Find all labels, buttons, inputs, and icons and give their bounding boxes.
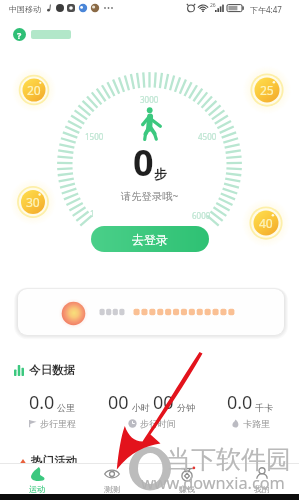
staticText: 去登录 xyxy=(132,232,168,247)
staticText: 6000 xyxy=(192,210,211,221)
staticText: ? xyxy=(17,29,22,41)
staticText: 3000 xyxy=(140,94,159,105)
staticText: 千卡 xyxy=(255,402,273,413)
staticText: 4500 xyxy=(198,131,217,142)
button[interactable]: Help xyxy=(13,27,71,42)
staticText: 40 xyxy=(259,215,273,231)
staticText: 步行时间 xyxy=(140,418,176,429)
staticText: 步行里程 xyxy=(40,418,76,429)
other: Help xyxy=(13,28,26,41)
staticText: 步 xyxy=(154,166,167,182)
button[interactable]: 20 xyxy=(11,67,57,113)
staticText: 请先登录哦~ xyxy=(121,189,179,203)
button[interactable] xyxy=(18,289,284,335)
staticText: 下午4:47 xyxy=(250,4,282,15)
staticText: 0.0 xyxy=(227,390,253,415)
button[interactable]: 30 xyxy=(9,178,57,226)
button[interactable]: 40 xyxy=(241,198,291,248)
staticText: 26 xyxy=(210,2,216,9)
staticText: 运动 xyxy=(29,484,45,493)
staticText: 热门活动 xyxy=(31,454,77,468)
staticText: 0 xyxy=(133,138,154,187)
button[interactable]: 去登录 xyxy=(91,226,209,252)
button[interactable]: 今日数据 xyxy=(14,363,75,377)
staticText: 小时 xyxy=(132,402,150,413)
button[interactable]: 测测 xyxy=(74,466,149,493)
button[interactable]: 我的 xyxy=(224,466,299,493)
staticText: 当下软件园 xyxy=(166,444,291,475)
staticText: 中国移动 xyxy=(9,4,41,14)
staticText: 1 xyxy=(90,208,95,219)
staticText: 20 xyxy=(27,82,41,98)
button[interactable]: 25 xyxy=(242,65,292,115)
button[interactable]: 热门活动 xyxy=(20,454,77,468)
staticText: 1500 xyxy=(85,131,104,142)
staticText: 今日数据 xyxy=(29,363,75,377)
staticText: 公里 xyxy=(57,402,75,413)
staticText: www.downxia.com xyxy=(141,472,285,494)
staticText: 测测 xyxy=(104,484,120,493)
staticText: 赚钱 xyxy=(179,484,195,493)
staticText: 0.0 xyxy=(29,390,55,415)
staticText: 00 xyxy=(153,390,174,415)
staticText: 25 xyxy=(260,82,274,98)
staticText: 我的 xyxy=(254,484,270,493)
button[interactable]: 运动 xyxy=(0,466,74,493)
staticText: 00 xyxy=(108,390,129,415)
staticText: 30 xyxy=(26,194,40,210)
button[interactable]: 赚钱 xyxy=(149,466,224,493)
staticText: 分钟 xyxy=(177,402,195,413)
staticText: 卡路里 xyxy=(243,418,270,429)
